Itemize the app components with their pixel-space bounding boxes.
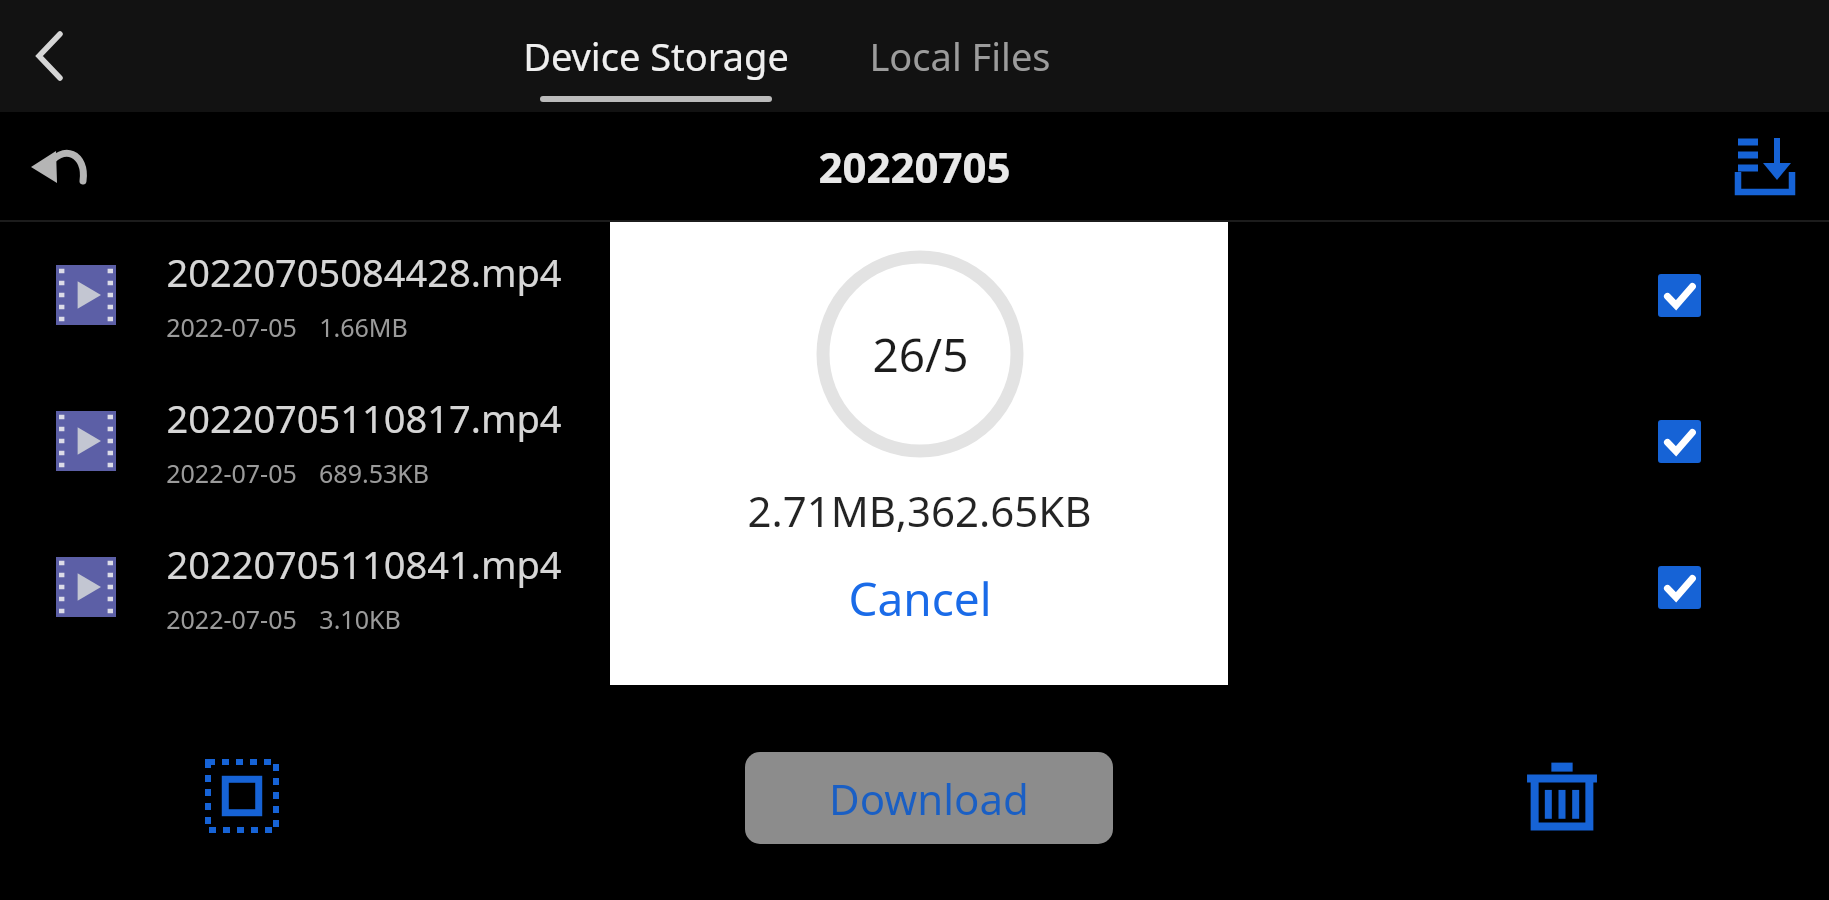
button[interactable]: 20220705110841.mp4 [0, 514, 1829, 660]
staticText: 2022-07-05 [166, 602, 297, 636]
button[interactable]: Select all [198, 752, 286, 840]
staticText: 2.71MB,362.65KB [747, 482, 1092, 539]
button[interactable]: Cancel [808, 559, 1032, 638]
button[interactable]: Download [745, 752, 1113, 844]
button[interactable]: Local Files [830, 0, 1090, 112]
staticText: 2022-07-05 [166, 310, 297, 344]
staticText: 20220705084428.mp4 [166, 246, 562, 298]
staticText: Local Files [869, 30, 1051, 82]
button[interactable]: Up one level [20, 127, 98, 205]
button[interactable]: Device Storage [500, 0, 812, 112]
button[interactable]: 20220705110817.mp4 [0, 368, 1829, 514]
staticText: 689.53KB [319, 456, 429, 490]
staticText: 3.10KB [319, 602, 401, 636]
staticText: 1.66MB [319, 310, 408, 344]
button[interactable]: Selected [1658, 420, 1701, 463]
staticText: 20220705110817.mp4 [166, 392, 562, 444]
button[interactable]: Delete [1518, 752, 1606, 840]
staticText: 20220705110841.mp4 [166, 538, 562, 590]
staticText: Device Storage [523, 30, 789, 82]
staticText: 20220705 [818, 138, 1011, 195]
button[interactable]: 20220705084428.mp4 [0, 222, 1829, 368]
button[interactable]: Download all [1723, 124, 1807, 208]
staticText: 26/5 [872, 323, 969, 386]
staticText: Cancel [848, 567, 992, 630]
staticText: 2022-07-05 [166, 456, 297, 490]
button[interactable]: Selected [1658, 274, 1701, 317]
staticText: Download [829, 770, 1029, 827]
button[interactable]: Selected [1658, 566, 1701, 609]
button[interactable]: Back [12, 18, 88, 94]
